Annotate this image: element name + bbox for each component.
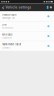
button[interactable]: Tachometer input [0, 41, 54, 51]
staticText: Vehicle type [2, 13, 16, 16]
button[interactable]: Vehicle type [0, 11, 54, 21]
button[interactable]: More options [50, 6, 52, 8]
staticText: Tachometer input [2, 43, 21, 46]
button[interactable]: Unit [0, 21, 54, 31]
staticText: ‹ [2, 4, 4, 11]
staticText: Odometer [2, 37, 12, 39]
staticText: Vehicle settings [5, 6, 31, 9]
button[interactable]: Back [2, 4, 4, 11]
staticText: Standard [2, 46, 10, 49]
staticText: Kilometers [2, 27, 13, 29]
staticText: Mileage [2, 33, 12, 36]
staticText: Passenger car [2, 17, 15, 19]
button[interactable]: Mileage [0, 31, 54, 41]
button[interactable]: Connection [47, 6, 48, 9]
staticText: Unit [2, 23, 7, 26]
